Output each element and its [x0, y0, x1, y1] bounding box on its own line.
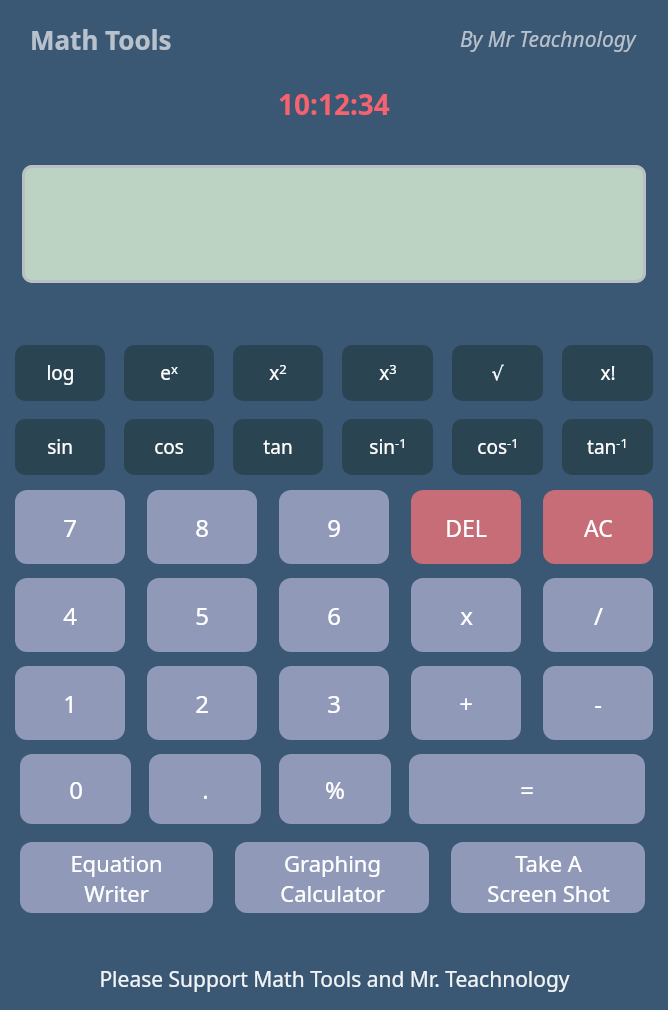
button[interactable]: Graphing [235, 842, 429, 913]
staticText: x [460, 599, 473, 632]
button[interactable]: Take A [451, 842, 645, 913]
button[interactable]: x [411, 578, 521, 652]
staticText: tan-1 [587, 434, 628, 460]
button[interactable]: tan [233, 419, 323, 475]
button[interactable]: √ [452, 345, 543, 401]
staticText: tan [263, 434, 293, 460]
button[interactable]: / [543, 578, 653, 652]
staticText: % [325, 773, 345, 806]
staticText: √ [491, 362, 504, 384]
staticText: 2 [195, 687, 209, 720]
button[interactable]: x! [562, 345, 653, 401]
staticText: 8 [195, 511, 209, 544]
staticText: AC [584, 512, 613, 543]
button[interactable]: - [543, 666, 653, 740]
staticText: By Mr Teachnology [460, 25, 636, 54]
button[interactable]: 6 [279, 578, 389, 652]
button[interactable]: 9 [279, 490, 389, 564]
button[interactable]: 1 [15, 666, 125, 740]
staticText: ex [160, 360, 178, 386]
button[interactable]: sin [15, 419, 105, 475]
button[interactable]: . [149, 754, 261, 824]
staticText: Please Support Math Tools and Mr. Teachn… [99, 965, 570, 994]
staticText: x3 [379, 360, 397, 386]
button[interactable]: 4 [15, 578, 125, 652]
staticText: / [594, 599, 603, 632]
button[interactable]: log [15, 345, 105, 401]
button[interactable]: DEL [411, 490, 521, 564]
staticText: 6 [327, 599, 341, 632]
staticText: Writer [84, 878, 149, 908]
staticText: sin-1 [369, 434, 407, 460]
staticText: cos [154, 434, 184, 460]
button[interactable]: = [409, 754, 645, 824]
staticText: Calculator [280, 878, 385, 908]
staticText: Screen Shot [487, 878, 610, 908]
staticText: x2 [269, 360, 287, 386]
button[interactable]: 5 [147, 578, 257, 652]
button[interactable]: Equation [20, 842, 213, 913]
staticText: 9 [327, 511, 341, 544]
staticText: sin [47, 434, 73, 460]
button[interactable]: tan-1 [562, 419, 653, 475]
staticText: 3 [327, 687, 341, 720]
staticText: 10:12:34 [278, 85, 390, 123]
staticText: Graphing [284, 848, 381, 878]
button[interactable]: cos [124, 419, 214, 475]
button[interactable] [22, 165, 646, 283]
staticText: cos-1 [477, 434, 519, 460]
button[interactable]: cos-1 [452, 419, 543, 475]
staticText: 4 [63, 599, 77, 632]
button[interactable]: 2 [147, 666, 257, 740]
button[interactable]: ex [124, 345, 214, 401]
staticText: = [520, 773, 534, 806]
staticText: Equation [70, 848, 163, 878]
staticText: Math Tools [30, 22, 172, 57]
button[interactable]: x2 [233, 345, 323, 401]
staticText: 0 [69, 773, 83, 806]
button[interactable]: x3 [342, 345, 433, 401]
staticText: 7 [63, 511, 77, 544]
button[interactable]: % [279, 754, 391, 824]
button[interactable]: 3 [279, 666, 389, 740]
staticText: 1 [63, 687, 77, 720]
button[interactable]: sin-1 [342, 419, 433, 475]
staticText: - [594, 687, 602, 720]
staticText: x! [600, 360, 616, 386]
staticText: Take A [515, 848, 582, 878]
staticText: 5 [195, 599, 209, 632]
button[interactable]: 8 [147, 490, 257, 564]
staticText: DEL [445, 512, 487, 543]
button[interactable]: Please Support Math Tools and Mr. Teachn… [0, 965, 668, 1010]
button[interactable]: AC [543, 490, 653, 564]
staticText: + [459, 687, 473, 720]
staticText: log [46, 360, 75, 386]
staticText: . [202, 773, 209, 806]
button[interactable]: 7 [15, 490, 125, 564]
button[interactable]: 0 [20, 754, 131, 824]
button[interactable]: + [411, 666, 521, 740]
